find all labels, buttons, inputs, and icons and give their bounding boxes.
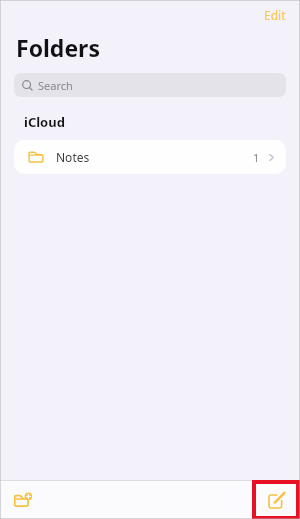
staticText: Edit xyxy=(264,7,286,23)
button[interactable]: Notes xyxy=(14,140,286,174)
button[interactable]: New Folder xyxy=(8,485,38,515)
staticText: iCloud xyxy=(24,113,65,131)
button[interactable]: New Note xyxy=(254,482,298,518)
staticText: Search xyxy=(38,78,73,93)
button[interactable]: Edit xyxy=(260,5,290,25)
staticText: 1 xyxy=(253,150,260,165)
staticText: Notes xyxy=(56,149,90,165)
staticText: Folders xyxy=(16,32,100,63)
button[interactable]: Search xyxy=(14,73,286,97)
